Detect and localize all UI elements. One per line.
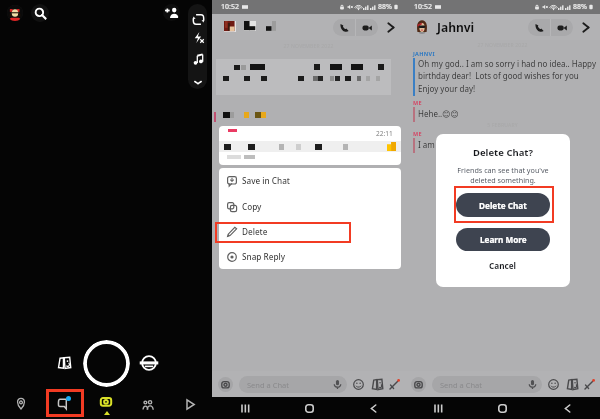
button[interactable]: Home <box>470 397 535 419</box>
button[interactable]: Capture <box>83 340 130 387</box>
staticText: Send a Chat <box>247 380 289 390</box>
staticText: 10:52 <box>414 2 432 12</box>
button[interactable]: Camera <box>99 396 113 410</box>
staticText: 22:11 <box>376 129 393 138</box>
staticText: Hehe..😊😊 <box>418 108 459 119</box>
button[interactable]: Recents <box>212 397 277 419</box>
button[interactable]: Stickers <box>352 378 365 391</box>
staticText: I am s <box>418 139 441 150</box>
button[interactable]: Stickers <box>547 378 560 391</box>
staticText: Snap Reply <box>242 251 286 262</box>
button[interactable]: Video call <box>356 19 378 36</box>
button[interactable]: Music <box>192 53 204 65</box>
button[interactable]: Open profile <box>382 19 398 35</box>
staticText: Save in Chat <box>242 175 290 186</box>
button[interactable]: Lenses <box>566 378 579 391</box>
button[interactable]: Copy <box>219 194 401 219</box>
button[interactable]: Open camera <box>218 377 233 392</box>
staticText: ME <box>413 130 422 137</box>
staticText: 88% <box>573 2 587 12</box>
button[interactable]: Cancel <box>456 257 550 273</box>
button[interactable]: Recents <box>405 397 470 419</box>
button[interactable]: Jahnvi avatar <box>416 20 428 34</box>
button[interactable]: Send <box>583 378 596 391</box>
button[interactable]: More options <box>193 77 203 87</box>
staticText: Copy <box>242 201 262 212</box>
staticText: Oh my god.. I am so sorry i had no idea.… <box>418 58 596 95</box>
button[interactable]: Send a Chat <box>239 376 347 393</box>
staticText: JAHNVI <box>413 50 435 57</box>
staticText: Delete <box>242 226 268 237</box>
button[interactable]: Profile <box>7 5 23 21</box>
button[interactable]: Map <box>13 395 29 411</box>
staticText: Cancel <box>489 260 517 271</box>
staticText: Learn More <box>480 234 527 245</box>
staticText: ME <box>413 99 422 106</box>
button[interactable]: Call <box>528 19 550 36</box>
button[interactable]: Send <box>388 378 401 391</box>
staticText: Jahnvi <box>437 19 475 35</box>
button[interactable]: Add friends <box>163 4 180 21</box>
button[interactable]: Open profile <box>577 19 593 35</box>
staticText: 88% <box>378 2 392 12</box>
button[interactable]: Video call <box>551 19 573 36</box>
staticText: Send a Chat <box>440 380 482 390</box>
button[interactable]: Learn More <box>456 228 550 251</box>
button[interactable]: Flash off <box>192 31 204 43</box>
button[interactable]: Lens explorer <box>140 354 158 372</box>
button[interactable]: Spotlight <box>184 398 197 411</box>
button[interactable]: Back <box>341 397 405 419</box>
staticText: Delete Chat? <box>436 146 570 159</box>
button[interactable]: Open camera <box>411 377 426 392</box>
button[interactable]: Delete Chat <box>456 193 550 217</box>
button[interactable]: Delete <box>219 219 401 244</box>
staticText: Friends can see that you've deleted some… <box>436 165 570 185</box>
button[interactable]: Chat <box>46 389 84 417</box>
button[interactable]: Search <box>31 4 49 22</box>
button[interactable]: Stories <box>142 400 155 410</box>
button[interactable]: Lenses <box>371 378 384 391</box>
button[interactable]: Snap Reply <box>219 244 401 269</box>
staticText: Delete Chat <box>479 200 527 211</box>
staticText: 10:52 <box>221 2 239 12</box>
button[interactable]: Back <box>535 397 600 419</box>
button[interactable]: Flip camera <box>192 13 204 25</box>
button[interactable]: Save in Chat <box>219 168 401 193</box>
button[interactable]: Call <box>333 19 355 36</box>
button[interactable]: Home <box>277 397 341 419</box>
button[interactable]: Send a Chat <box>432 376 542 393</box>
button[interactable]: Lenses carousel <box>55 355 73 371</box>
